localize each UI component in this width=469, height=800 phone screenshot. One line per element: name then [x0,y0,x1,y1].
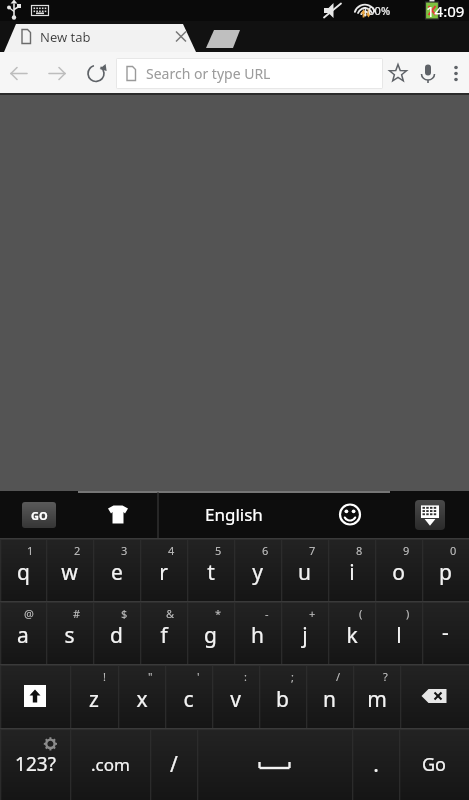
staticText: m [367,685,387,714]
staticText: z [89,685,99,714]
staticText: i [349,558,355,587]
staticText: p [439,558,452,587]
button[interactable]: q [0,538,46,601]
staticText: d [110,621,123,650]
staticText: 3 [121,543,128,558]
button[interactable]: GO [0,491,78,538]
button[interactable]: t [187,538,234,601]
staticText: y [252,558,263,587]
button[interactable]: Voice search [413,52,443,95]
staticText: v [230,685,241,714]
button[interactable]: n [306,664,353,728]
staticText: u [298,558,311,587]
button[interactable]: More options [443,52,469,95]
staticText: GO [31,508,48,523]
button[interactable]: r [140,538,187,601]
staticText: Search or type URL [146,64,271,83]
staticText: 123? [15,751,56,777]
staticText: " [148,669,153,684]
button[interactable]: - [422,601,469,664]
button[interactable]: p [422,538,469,601]
button[interactable]: . [352,728,399,800]
staticText: / [336,669,341,684]
button[interactable]: / [150,728,197,800]
staticText: # [73,606,81,621]
staticText: 1 [27,543,34,558]
staticText: ; [291,669,294,684]
staticText: 6 [262,543,269,558]
staticText: ! [103,669,106,684]
button[interactable]: f [140,601,187,664]
button[interactable]: New tab [0,21,469,52]
staticText: x [136,685,148,714]
staticText: c [183,685,194,714]
button[interactable]: Hide keyboard [390,491,469,538]
button[interactable]: English [158,491,310,538]
button[interactable]: Space [197,728,352,800]
staticText: h [251,621,264,650]
staticText: + [309,606,316,621]
button[interactable]: m [353,664,400,728]
staticText: g [204,621,217,650]
staticText: Go [422,752,446,777]
staticText: n [323,685,336,714]
staticText: o [392,558,405,587]
button[interactable]: u [281,538,328,601]
button[interactable]: g [187,601,234,664]
staticText: @ [24,606,34,621]
button[interactable]: Go [399,728,469,800]
staticText: New tab [40,28,91,46]
staticText: 2 [74,543,81,558]
staticText: 8 [356,543,363,558]
staticText: - [265,606,269,621]
button[interactable]: i [328,538,375,601]
button[interactable]: Emoji [310,491,390,538]
button[interactable]: d [93,601,140,664]
button[interactable]: b [259,664,306,728]
button[interactable]: Shift [0,664,70,728]
staticText: . [373,750,379,779]
staticText: 14:09 [426,1,465,21]
button[interactable]: l [375,601,422,664]
button[interactable]: z [70,664,118,728]
button[interactable]: e [93,538,140,601]
staticText: & [166,606,175,621]
button[interactable]: v [212,664,259,728]
button[interactable]: k [328,601,375,664]
staticText: 7 [309,543,316,558]
staticText: 5 [215,543,222,558]
button[interactable]: Forward [38,52,76,95]
button[interactable]: y [234,538,281,601]
staticText: ( [359,606,363,621]
staticText: e [111,558,123,587]
button[interactable]: Reload [76,52,116,95]
staticText: - [442,618,449,647]
button[interactable]: Bookmark [383,52,413,95]
button[interactable]: Delete [400,664,469,728]
button[interactable]: Theme [78,491,158,538]
button[interactable]: .com [70,728,150,800]
staticText: ) [406,606,410,621]
button[interactable]: a [0,601,46,664]
button[interactable]: x [118,664,165,728]
staticText: English [205,503,263,526]
button[interactable]: Search or type URL [116,58,383,89]
button[interactable]: o [375,538,422,601]
staticText: q [17,558,30,587]
button[interactable]: j [281,601,328,664]
button[interactable]: w [46,538,93,601]
staticText: a [17,621,29,650]
button[interactable]: Back [0,52,38,95]
staticText: 0 [450,543,457,558]
button[interactable]: s [46,601,93,664]
staticText: 100% [362,3,391,18]
staticText: / [170,750,178,779]
staticText: : [244,669,247,684]
button[interactable]: c [165,664,212,728]
button[interactable]: 123? [0,728,70,800]
staticText: $ [121,606,128,621]
staticText: ? [383,669,388,684]
staticText: f [160,621,168,650]
staticText: .com [91,753,130,776]
button[interactable]: h [234,601,281,664]
